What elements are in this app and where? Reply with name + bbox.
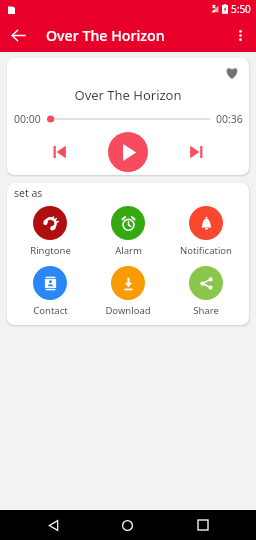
button[interactable]: Share (171, 266, 241, 317)
button[interactable]: Back (4, 21, 32, 49)
staticText: Over The Horizon (7, 86, 249, 104)
button[interactable]: Notification (171, 206, 241, 257)
staticText: Share (193, 304, 219, 317)
staticText: Alarm (115, 244, 142, 257)
button[interactable]: Recents (188, 510, 218, 540)
button[interactable]: Alarm (93, 206, 163, 257)
button[interactable]: Home (112, 510, 142, 540)
button[interactable]: Next (181, 137, 211, 167)
button[interactable]: Previous (45, 137, 75, 167)
staticText: set as (14, 186, 43, 200)
staticText: Contact (33, 304, 68, 317)
staticText: 00:00 (14, 112, 41, 126)
button[interactable]: Back (38, 510, 68, 540)
staticText: 5:50 (231, 2, 251, 16)
button[interactable]: Contact (15, 266, 85, 317)
staticText: Over The Horizon (46, 26, 165, 45)
staticText: Download (105, 304, 151, 317)
staticText: 00:36 (216, 112, 243, 126)
button[interactable]: Download (93, 266, 163, 317)
button[interactable]: More options (226, 21, 254, 49)
button[interactable]: Favorite (220, 60, 244, 84)
button[interactable]: Play (108, 132, 148, 172)
staticText: Ringtone (30, 244, 71, 257)
button[interactable]: Ringtone (15, 206, 85, 257)
staticText: Notification (180, 244, 232, 257)
